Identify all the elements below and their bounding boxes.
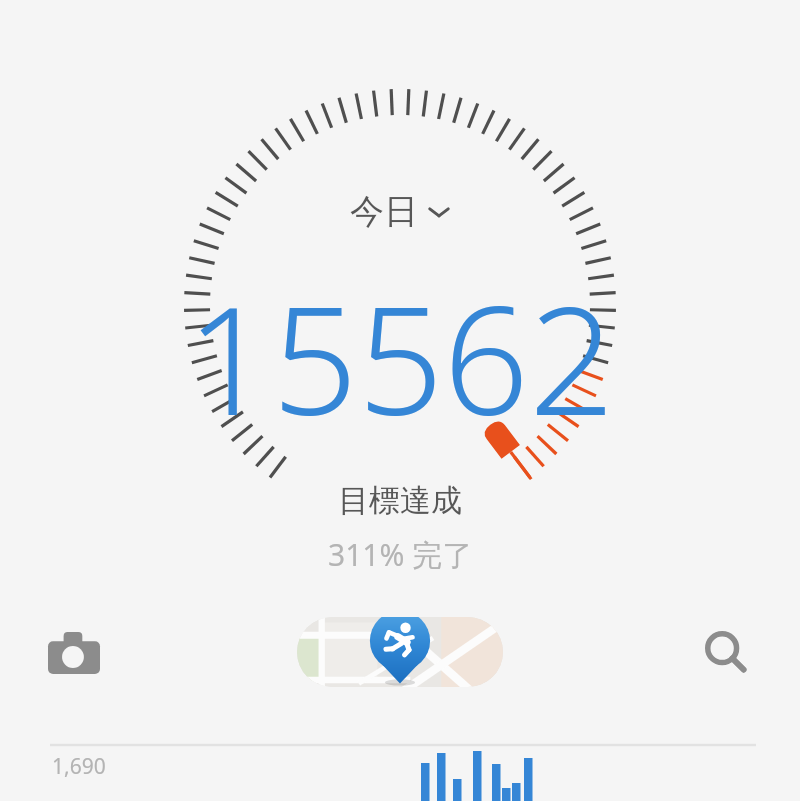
staticText: 311% 完了 bbox=[328, 534, 473, 575]
staticText: 目標達成 bbox=[338, 481, 462, 520]
button[interactable]: Camera bbox=[38, 617, 110, 689]
button[interactable]: Start run tracking bbox=[297, 617, 503, 687]
staticText: 今日 bbox=[350, 190, 418, 233]
button[interactable]: 今日 bbox=[340, 186, 460, 237]
staticText: 1,690 bbox=[52, 752, 106, 781]
staticText: 15562 bbox=[186, 255, 615, 459]
button[interactable]: Search bbox=[690, 617, 762, 689]
